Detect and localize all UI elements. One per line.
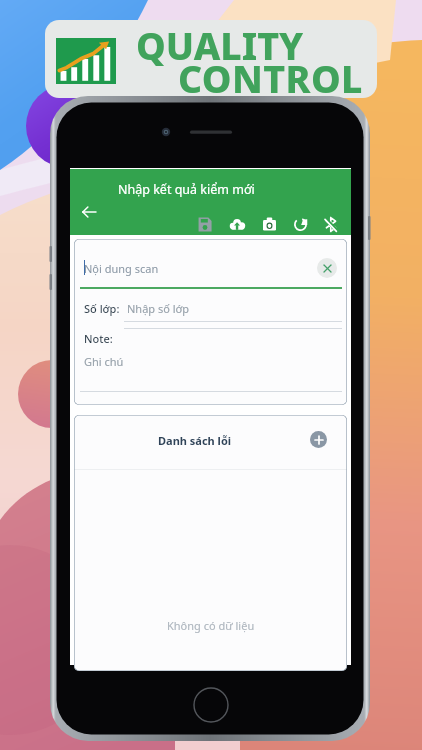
button[interactable]: Add error: [310, 431, 327, 448]
button[interactable]: Clear text: [317, 258, 337, 278]
button[interactable]: Camera: [258, 213, 280, 235]
staticText: Nhập kết quả kiểm mới: [118, 181, 255, 198]
staticText: Nội dung scan: [84, 261, 159, 276]
button[interactable]: Save: [194, 213, 216, 235]
staticText: Không có dữ liệu: [167, 618, 255, 633]
staticText: Nhập số lớp: [127, 301, 190, 316]
button[interactable]: Refresh: [289, 213, 311, 235]
button[interactable]: Upload: [226, 213, 248, 235]
button[interactable]: Bluetooth: [320, 213, 342, 235]
button[interactable]: Back: [77, 200, 101, 224]
staticText: Danh sách lỗi: [158, 433, 232, 448]
staticText: CONTROL: [178, 53, 363, 98]
staticText: Note:: [84, 331, 113, 346]
staticText: QUALITY: [136, 20, 304, 71]
staticText: Ghi chú: [84, 354, 124, 369]
staticText: Số lớp:: [84, 301, 120, 316]
